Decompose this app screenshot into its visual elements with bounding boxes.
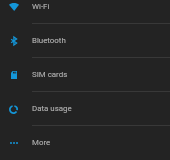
staticText: Data usage xyxy=(32,104,72,113)
button[interactable]: Wi-Fi xyxy=(0,0,170,24)
button[interactable]: Bluetooth xyxy=(0,24,170,58)
staticText: Bluetooth xyxy=(32,36,66,45)
button[interactable]: More xyxy=(0,126,170,160)
button[interactable]: Data usage xyxy=(0,92,170,126)
button[interactable]: SIM cards xyxy=(0,58,170,92)
staticText: More xyxy=(32,138,51,147)
staticText: Wi-Fi xyxy=(32,2,50,11)
staticText: SIM cards xyxy=(32,70,68,79)
